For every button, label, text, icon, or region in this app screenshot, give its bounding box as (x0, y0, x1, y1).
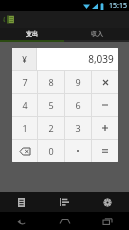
button[interactable]: 8 (38, 71, 64, 93)
staticText: 9 (75, 76, 81, 88)
button[interactable]: Home (43, 212, 86, 230)
staticText: 8 (48, 76, 54, 88)
button[interactable]: Records (0, 192, 43, 212)
button[interactable]: 7 (12, 71, 37, 93)
button[interactable]: 6 (65, 94, 91, 116)
button[interactable]: App icon (3, 13, 16, 26)
staticText: ¥ (22, 54, 27, 65)
button[interactable] (65, 140, 91, 162)
button[interactable]: 4 (12, 94, 37, 116)
button[interactable]: 1 (12, 117, 37, 139)
button[interactable] (92, 140, 118, 162)
button[interactable]: Settings (86, 192, 129, 212)
button[interactable]: 3 (65, 117, 91, 139)
button[interactable]: Recents (86, 212, 129, 230)
staticText: 7 (22, 76, 28, 88)
button[interactable]: 9 (65, 71, 91, 93)
button[interactable]: 収入 (64, 28, 129, 40)
staticText: 支出 (26, 30, 38, 38)
staticText: 15:15 (109, 1, 127, 11)
button[interactable]: Backspace (12, 140, 37, 162)
staticText: 0 (48, 145, 54, 157)
button[interactable] (92, 94, 118, 116)
button[interactable]: 5 (38, 94, 64, 116)
button[interactable] (92, 117, 118, 139)
staticText: 4 (22, 99, 28, 111)
staticText: 収入 (91, 30, 103, 38)
button[interactable]: Summary (43, 192, 86, 212)
button[interactable]: Back (0, 212, 43, 230)
staticText: 6 (75, 99, 81, 111)
staticText: 2 (48, 122, 54, 134)
button[interactable]: 2 (38, 117, 64, 139)
button[interactable]: ¥ (12, 48, 36, 70)
button[interactable]: 8,039 (37, 48, 118, 70)
button[interactable]: 0 (38, 140, 64, 162)
staticText: 3 (75, 122, 81, 134)
button[interactable] (92, 71, 118, 93)
staticText: 8,039 (88, 52, 114, 66)
staticText: 5 (48, 99, 54, 111)
button[interactable]: 支出 (0, 28, 64, 40)
staticText: 1 (22, 122, 28, 134)
